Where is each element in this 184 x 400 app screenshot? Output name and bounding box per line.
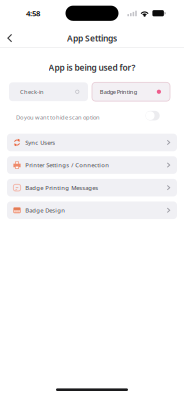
staticText: Badge Printing Messages	[25, 184, 98, 192]
staticText: Badge Design	[25, 206, 65, 214]
staticText: Printer Settings / Connection	[25, 161, 109, 169]
button[interactable]: Back	[0, 29, 21, 47]
staticText: 4:58	[26, 8, 40, 18]
staticText: Sync Users	[25, 139, 55, 146]
staticText: Badge Printing	[100, 88, 137, 95]
button[interactable]: Badge Design	[7, 201, 177, 219]
staticText: App Settings	[67, 32, 117, 44]
button[interactable]: Badge Printing	[92, 82, 170, 101]
button[interactable]: Sync Users	[7, 134, 177, 151]
staticText: Do you want to hide scan option	[16, 113, 100, 121]
button[interactable]: Hide scan option	[145, 110, 160, 121]
button[interactable]: Check-in	[9, 82, 88, 101]
button[interactable]: Badge Printing Messages	[7, 179, 177, 196]
button[interactable]: Printer Settings / Connection	[7, 156, 177, 174]
staticText: Check-in	[20, 88, 44, 95]
staticText: App is being used for?	[48, 62, 135, 73]
